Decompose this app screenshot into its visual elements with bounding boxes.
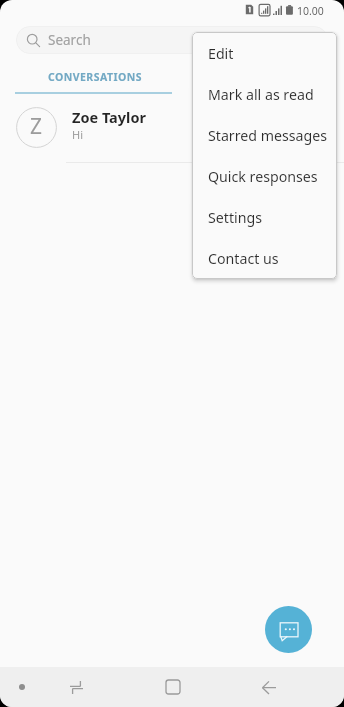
staticText: Hi: [72, 127, 83, 142]
staticText: CONVERSATIONS: [48, 70, 142, 84]
button[interactable]: Edit: [192, 32, 337, 74]
button[interactable]: Menu: [8, 673, 36, 701]
button[interactable]: Home: [159, 673, 187, 701]
button[interactable]: Settings: [192, 197, 337, 238]
button[interactable]: CONVERSATIONS: [0, 54, 172, 93]
button[interactable]: Contact us: [192, 238, 337, 279]
button[interactable]: Back: [255, 673, 283, 701]
button[interactable]: [172, 54, 344, 93]
staticText: Starred messages: [208, 126, 328, 145]
staticText: 10.00: [297, 4, 324, 18]
button[interactable]: New conversation: [265, 606, 312, 653]
staticText: Zoe Taylor: [72, 107, 146, 127]
button[interactable]: Z: [0, 93, 344, 162]
staticText: Edit: [208, 44, 234, 63]
button[interactable]: Quick responses: [192, 156, 337, 197]
button[interactable]: Recent apps: [62, 673, 90, 701]
staticText: Search: [48, 31, 91, 49]
staticText: Contact us: [208, 249, 279, 268]
button[interactable]: Starred messages: [192, 115, 337, 156]
staticText: Mark all as read: [208, 85, 314, 104]
staticText: Settings: [208, 208, 262, 227]
staticText: Z: [30, 112, 43, 141]
button[interactable]: Search: [16, 26, 328, 54]
staticText: Quick responses: [208, 167, 318, 186]
button[interactable]: Mark all as read: [192, 74, 337, 115]
